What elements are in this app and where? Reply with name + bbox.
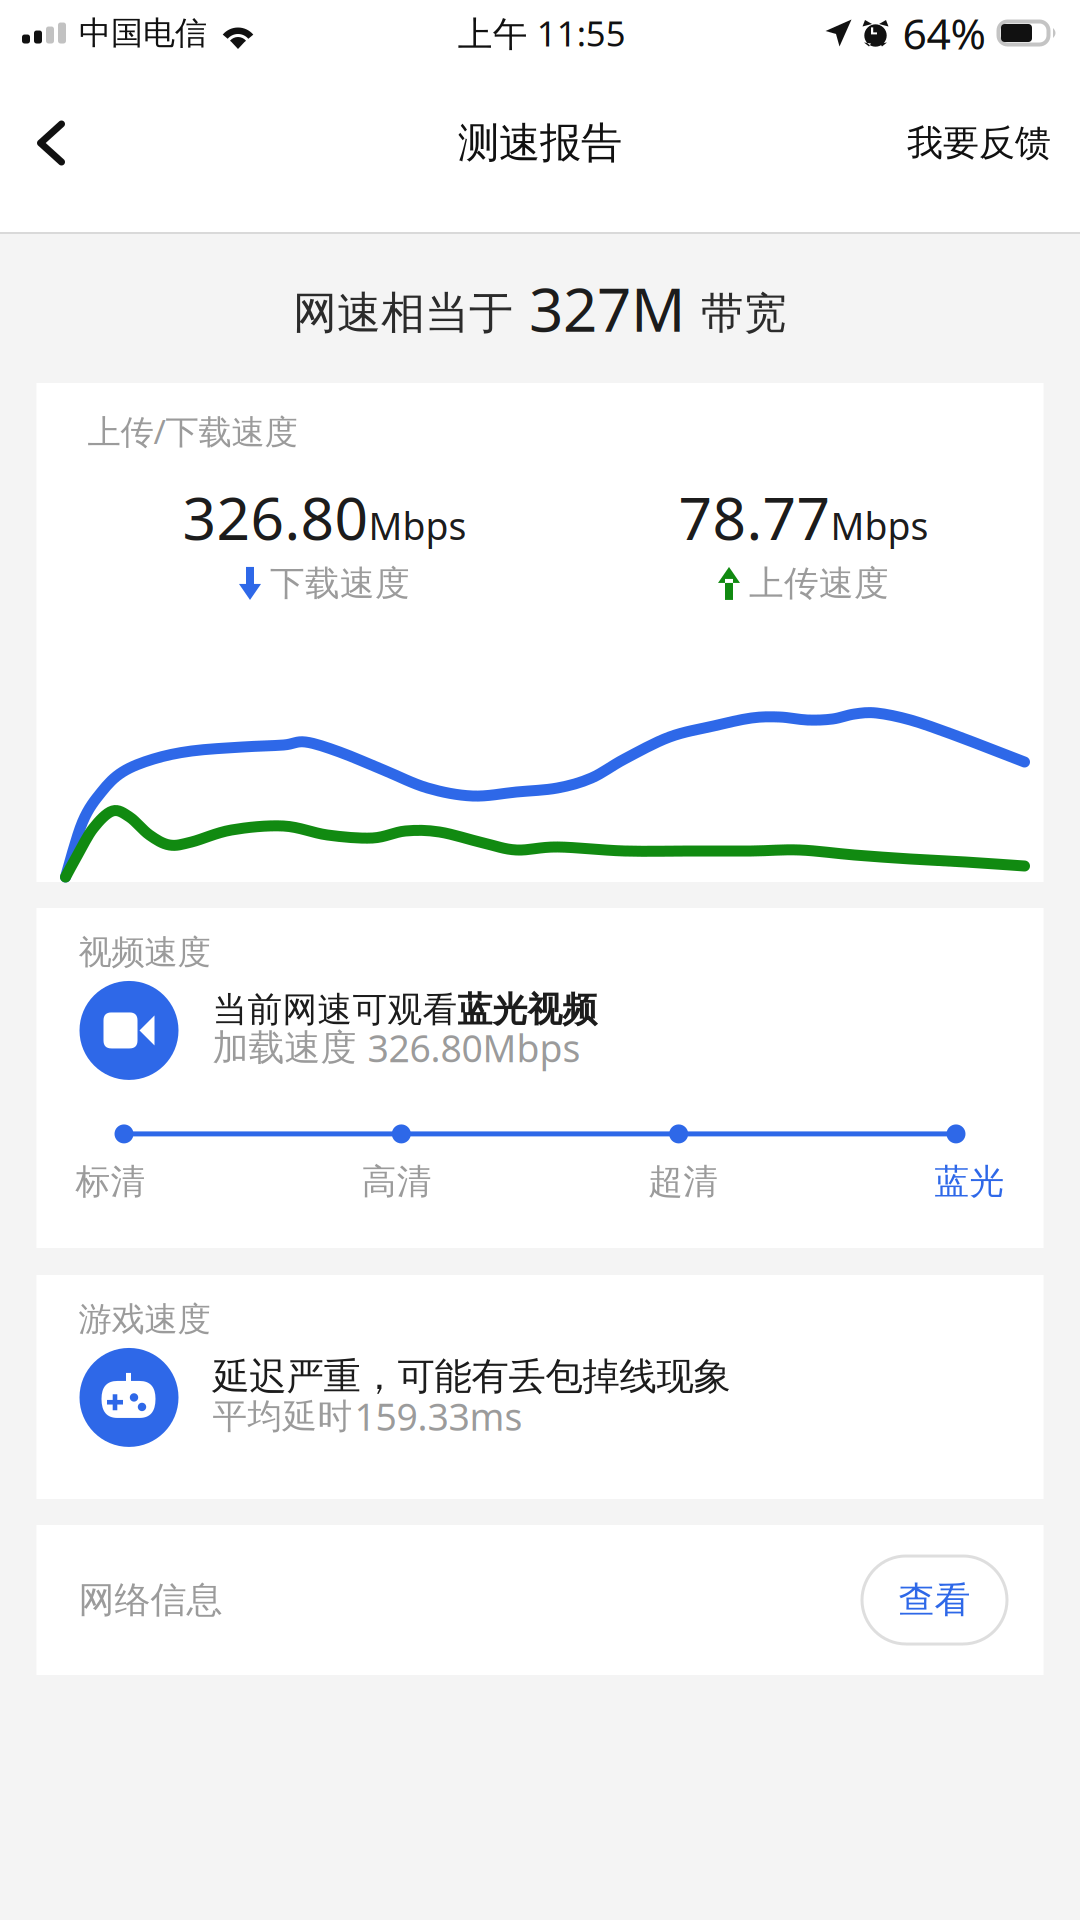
staticText: 下载速度	[270, 562, 410, 605]
staticText: 64%	[902, 5, 985, 61]
staticText: 我要反馈	[907, 121, 1051, 165]
staticText: 高清	[362, 1160, 432, 1203]
button[interactable]: 查看	[860, 1554, 1008, 1645]
staticText: 视频速度	[78, 932, 210, 973]
staticText: 平均延时	[212, 1395, 352, 1438]
staticText: 上传/下载速度	[87, 409, 297, 453]
staticText: 带宽	[701, 287, 787, 340]
staticText: 加载速度	[212, 1026, 356, 1070]
staticText: 超清	[648, 1160, 718, 1203]
staticText: 网速相当于	[293, 286, 513, 340]
staticText: 中国电信	[79, 13, 207, 53]
staticText: 查看	[898, 1578, 970, 1622]
staticText: 当前网速可观看	[212, 988, 457, 1031]
button[interactable]: 返回	[0, 88, 102, 198]
staticText: 蓝光	[934, 1160, 1004, 1203]
staticText: 游戏速度	[78, 1299, 210, 1340]
staticText: 159.33ms	[354, 1392, 522, 1441]
staticText: 蓝光视频	[457, 988, 597, 1031]
staticText: 标清	[75, 1160, 145, 1203]
staticText: 测速报告	[458, 118, 622, 168]
staticText: 327M	[529, 269, 685, 348]
staticText: 上午 11:55	[458, 10, 626, 56]
staticText: Mbps	[830, 501, 928, 550]
staticText: 326.80	[182, 478, 368, 556]
button[interactable]: 我要反馈	[907, 88, 1080, 198]
staticText: 78.77	[678, 478, 830, 556]
staticText: 延迟严重，可能有丢包掉线现象	[212, 1354, 730, 1400]
staticText: 上传速度	[749, 562, 889, 605]
staticText: 326.80Mbps	[367, 1023, 580, 1072]
staticText: Mbps	[368, 501, 466, 550]
staticText: 网络信息	[78, 1578, 222, 1622]
